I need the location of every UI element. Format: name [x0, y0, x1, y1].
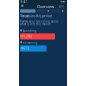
button[interactable]: $612	[20, 45, 46, 52]
staticText: $612	[21, 47, 29, 50]
staticText: Overview	[37, 4, 54, 9]
staticText: Review your spending across	[20, 20, 58, 23]
button[interactable]: All	[20, 9, 35, 13]
button[interactable]: Menu	[20, 3, 25, 8]
button[interactable]: Filter	[51, 9, 64, 13]
button[interactable]: Edit	[58, 4, 65, 9]
staticText: Edit	[59, 5, 64, 8]
staticText: Spending	[23, 29, 37, 33]
staticText: $1,284	[21, 35, 32, 38]
staticText: Remaining	[23, 41, 38, 44]
button[interactable]: Search	[36, 9, 50, 13]
button[interactable]: $1,284	[20, 33, 55, 39]
staticText: 9:41	[20, 0, 27, 4]
staticText: Transactions this period	[20, 14, 52, 18]
staticText: what is left this month.	[20, 22, 52, 26]
